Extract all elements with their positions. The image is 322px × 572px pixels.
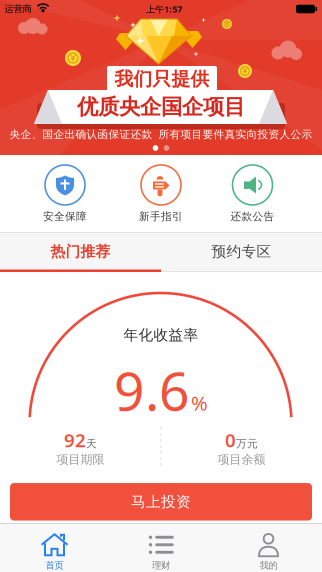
staticText: 运营商 (4, 3, 31, 15)
staticText: 9.6 (114, 355, 190, 425)
staticText: % (191, 390, 208, 416)
staticText: 央企、国企出确认函保证还款 所有项目要件真实向投资人公示 (9, 128, 312, 141)
staticText: 我的 (259, 560, 277, 571)
button[interactable]: 新手指引 (111, 158, 211, 230)
button[interactable]: 安全保障 (15, 158, 115, 230)
button[interactable]: 预约专区 (161, 232, 322, 271)
button[interactable]: 首页 (4, 528, 104, 572)
staticText: 年化收益率 (123, 326, 198, 344)
staticText: 热门推荐 (50, 242, 110, 260)
staticText: 天 (86, 437, 97, 450)
staticText: 预约专区 (211, 242, 271, 260)
staticText: 还款公告 (230, 210, 274, 223)
button[interactable]: 热门推荐 (0, 232, 161, 271)
staticText: 安全保障 (43, 210, 87, 223)
button[interactable]: 我的 (218, 528, 318, 572)
staticText: 项目余额 (217, 452, 265, 467)
staticText: 项目期限 (56, 452, 104, 467)
staticText: 马上投资 (131, 493, 191, 511)
staticText: 首页 (45, 560, 63, 571)
button[interactable]: 活动横幅 (0, 0, 322, 155)
staticText: 0 (225, 428, 236, 452)
staticText: 优质央企国企项目 (77, 94, 245, 120)
button[interactable]: 理财 (111, 528, 211, 572)
staticText: 92 (64, 428, 86, 452)
staticText: 上午1:57 (146, 3, 182, 15)
button[interactable]: 马上投资 (10, 483, 312, 521)
button[interactable]: 还款公告 (202, 158, 302, 230)
staticText: 新手指引 (139, 210, 183, 223)
staticText: 理财 (152, 560, 170, 571)
staticText: 我们只提供 (114, 67, 209, 90)
staticText: 万元 (236, 437, 258, 450)
